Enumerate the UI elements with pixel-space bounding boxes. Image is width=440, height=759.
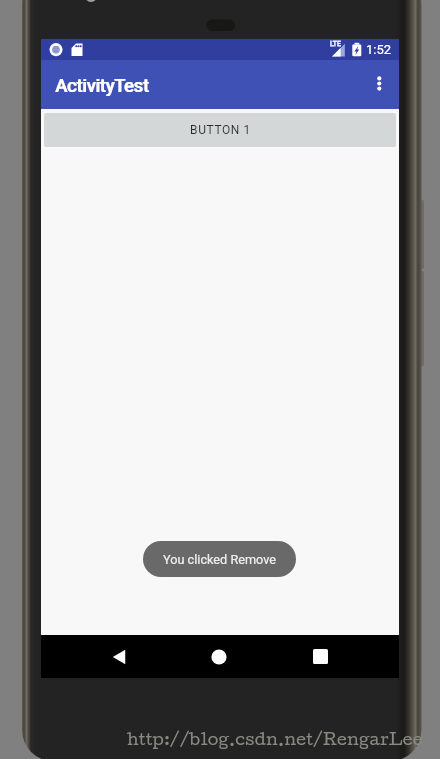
staticText: LTE [330,40,341,48]
staticText: You clicked Remove [163,552,276,567]
staticText: ActivityTest [56,75,150,96]
button[interactable]: You clicked Remove [143,541,296,577]
staticText: ActivityTest [55,75,149,96]
button[interactable]: More options [355,63,399,107]
button[interactable]: BUTTON 1 [44,113,396,147]
staticText: BUTTON 1 [190,123,251,137]
button[interactable]: Recent apps [300,635,340,678]
button[interactable]: Back [99,635,139,678]
staticText: 1:52 [366,42,392,57]
staticText: http://blog.csdn.net/RengarLee [127,728,423,748]
button[interactable]: Home [199,635,239,678]
